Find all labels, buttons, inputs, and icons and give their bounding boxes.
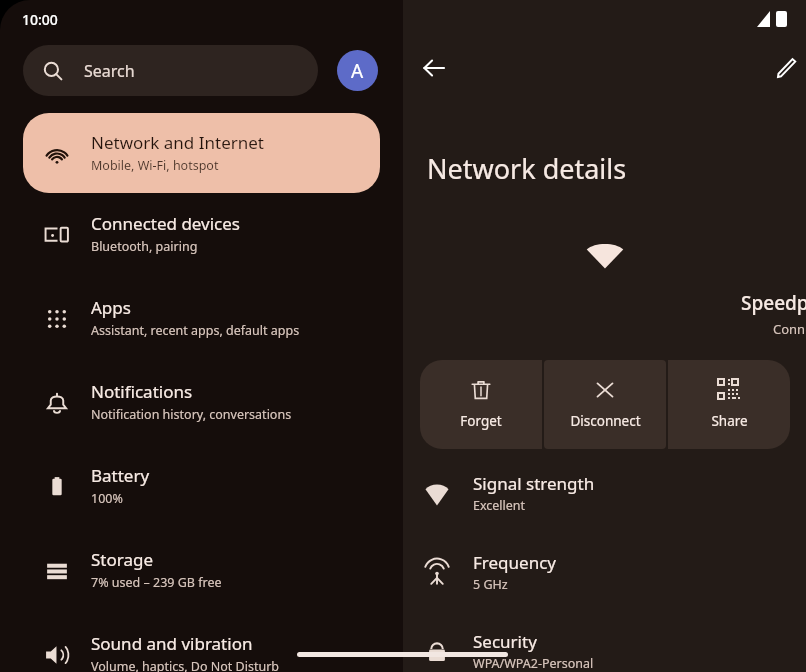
staticText: Storage bbox=[91, 548, 154, 571]
staticText: Connected bbox=[773, 320, 806, 338]
staticText: Share bbox=[711, 412, 748, 430]
staticText: 10:00 bbox=[22, 10, 58, 29]
staticText: Notification history, conversations bbox=[91, 406, 292, 423]
button[interactable]: Forget bbox=[420, 360, 542, 449]
staticText: 7% used – 239 GB free bbox=[91, 574, 222, 591]
button[interactable]: Battery bbox=[0, 458, 403, 542]
staticText: Connected devices bbox=[91, 212, 241, 235]
staticText: 5 GHz bbox=[473, 576, 508, 593]
staticText: 100% bbox=[91, 490, 123, 507]
button[interactable]: Notifications bbox=[0, 374, 403, 458]
button[interactable]: Disconnect bbox=[544, 360, 666, 449]
button[interactable]: Share bbox=[668, 360, 790, 449]
staticText: Bluetooth, pairing bbox=[91, 238, 198, 255]
staticText: Excellent bbox=[473, 497, 526, 514]
button[interactable]: Edit bbox=[764, 46, 806, 90]
staticText: Apps bbox=[91, 296, 131, 319]
staticText: Security bbox=[473, 630, 537, 653]
staticText: Speedperform bbox=[741, 290, 806, 316]
staticText: Sound and vibration bbox=[91, 632, 253, 655]
button[interactable]: Frequency bbox=[403, 547, 806, 626]
button[interactable]: Connected devices bbox=[0, 206, 403, 290]
staticText: Frequency bbox=[473, 551, 556, 574]
staticText: Network and Internet bbox=[91, 131, 264, 154]
staticText: Volume, haptics, Do Not Disturb bbox=[91, 658, 280, 672]
staticText: Assistant, recent apps, default apps bbox=[91, 322, 300, 339]
button[interactable]: Account bbox=[337, 50, 378, 91]
button[interactable]: Storage bbox=[0, 542, 403, 626]
staticText: Network details bbox=[427, 150, 627, 187]
button[interactable]: Security bbox=[403, 626, 806, 672]
staticText: Battery bbox=[91, 464, 150, 487]
staticText: Mobile, Wi-Fi, hotspot bbox=[91, 157, 219, 174]
button[interactable]: Sound and vibration bbox=[0, 626, 403, 672]
staticText: A bbox=[351, 58, 364, 84]
staticText: Signal strength bbox=[473, 472, 595, 495]
staticText: WPA/WPA2-Personal bbox=[473, 655, 594, 672]
button[interactable]: Back bbox=[412, 46, 456, 90]
staticText: Forget bbox=[460, 412, 502, 430]
button[interactable]: Apps bbox=[0, 290, 403, 374]
staticText: Notifications bbox=[91, 380, 193, 403]
staticText: Disconnect bbox=[570, 412, 641, 430]
button[interactable]: Signal strength bbox=[403, 468, 806, 547]
button[interactable]: Search bbox=[23, 45, 318, 96]
button[interactable]: Network and Internet bbox=[23, 113, 380, 193]
staticText: Search bbox=[84, 60, 135, 82]
